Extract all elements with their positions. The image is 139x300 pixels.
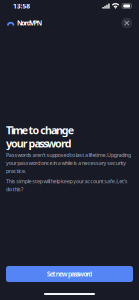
staticText: Passwords aren't supposed to last a life… — [6, 151, 131, 174]
staticText: Time to change your password — [6, 123, 74, 150]
staticText: NordVPN — [17, 19, 42, 27]
staticText: Set new password — [47, 270, 92, 278]
staticText: This simple step will help keep your acc… — [6, 178, 128, 193]
button[interactable]: Set new password — [6, 266, 133, 282]
button[interactable]: Close — [121, 18, 132, 28]
staticText: 13:58 — [13, 2, 30, 10]
